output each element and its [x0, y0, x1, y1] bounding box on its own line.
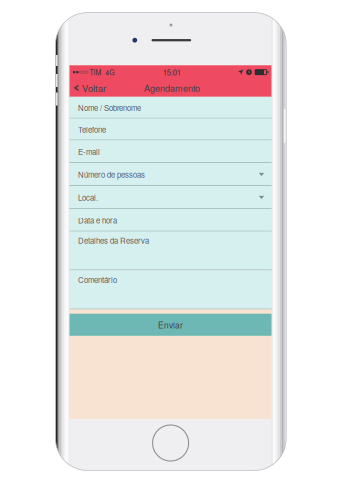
- button[interactable]: Comentário: [69, 270, 271, 309]
- button[interactable]: E-mail: [69, 140, 271, 163]
- staticText: Detalhes da Reserva: [78, 235, 149, 246]
- staticText: Nome / Sobrenome: [78, 102, 141, 113]
- staticText: Telefone: [78, 124, 106, 135]
- button[interactable]: Voltar: [69, 79, 111, 97]
- button[interactable]: Telefone: [69, 118, 271, 140]
- staticText: TIM: [89, 67, 101, 77]
- staticText: 4G: [105, 67, 114, 77]
- staticText: Local.: [78, 192, 98, 203]
- staticText: Agendamento: [144, 81, 200, 94]
- button[interactable]: Enviar: [69, 314, 271, 336]
- staticText: Data e hora: [78, 215, 117, 226]
- staticText: E-mail: [78, 146, 100, 157]
- staticText: Enviar: [158, 319, 183, 331]
- button[interactable]: Nome / Sobrenome: [69, 97, 271, 118]
- button[interactable]: Número de pessoas: [69, 163, 271, 186]
- staticText: Número de pessoas: [78, 169, 145, 180]
- staticText: Voltar: [82, 81, 106, 95]
- button[interactable]: Data e hora: [69, 209, 271, 231]
- staticText: 15:01: [163, 67, 181, 78]
- staticText: Comentário: [78, 274, 117, 285]
- button[interactable]: Local.: [69, 186, 271, 209]
- button[interactable]: Detalhes da Reserva: [69, 231, 271, 270]
